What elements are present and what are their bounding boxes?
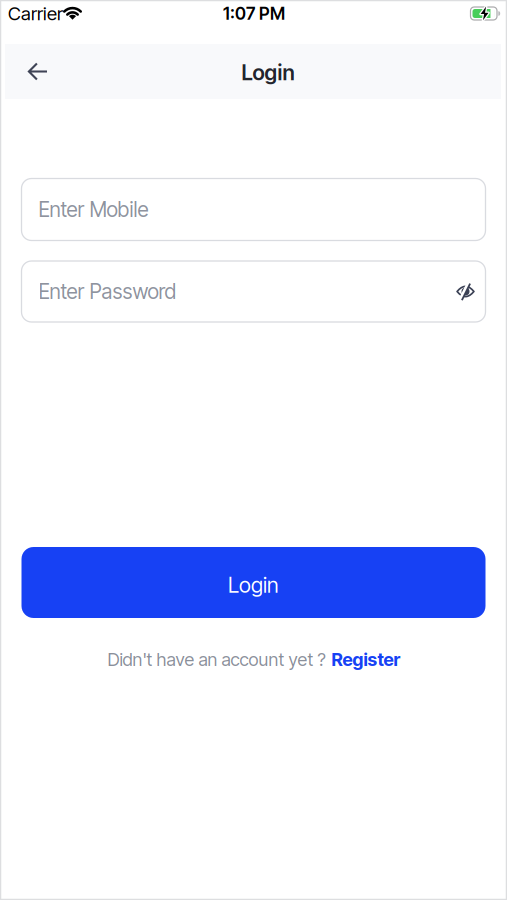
- staticText: Carrier: [8, 2, 63, 25]
- staticText: 1:07 PM: [223, 3, 285, 24]
- button[interactable]: Show password: [456, 284, 474, 298]
- staticText: Didn't have an account yet ?: [107, 649, 325, 670]
- staticText: Enter Mobile: [38, 197, 148, 222]
- staticText: Login: [228, 572, 279, 598]
- button[interactable]: Back: [14, 47, 62, 95]
- staticText: Enter Password: [38, 279, 176, 304]
- staticText: Login: [241, 60, 294, 85]
- staticText: Register: [331, 649, 400, 670]
- button[interactable]: Login: [21, 547, 485, 618]
- button[interactable]: Register: [331, 649, 400, 670]
